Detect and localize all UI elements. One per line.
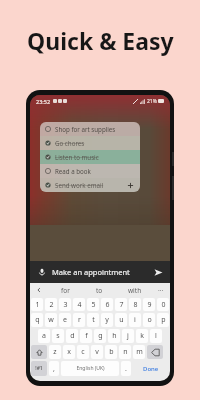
staticText: 7 xyxy=(119,300,124,310)
button[interactable]: y xyxy=(101,313,113,327)
button[interactable]: u xyxy=(115,313,127,327)
button[interactable]: j xyxy=(122,329,134,343)
button[interactable] xyxy=(147,345,163,359)
button[interactable]: 9 xyxy=(143,298,155,311)
staticText: f xyxy=(85,331,88,341)
button[interactable]: g xyxy=(94,329,106,343)
staticText: a xyxy=(42,331,46,341)
button[interactable]: o xyxy=(143,313,155,327)
staticText: u xyxy=(119,315,124,325)
staticText: 1 xyxy=(35,300,40,310)
button[interactable]: . xyxy=(121,361,131,376)
staticText: 8 xyxy=(133,300,138,310)
button[interactable]: Send xyxy=(152,266,164,278)
staticText: h xyxy=(112,331,117,341)
button[interactable]: c xyxy=(77,345,89,359)
button[interactable]: p xyxy=(157,313,169,327)
button[interactable]: 1 xyxy=(31,298,43,311)
button[interactable]: Send work email xyxy=(40,178,140,192)
button[interactable]: with xyxy=(117,283,152,297)
staticText: Go chores xyxy=(55,139,85,147)
staticText: 3 xyxy=(63,300,68,310)
button[interactable]: s xyxy=(52,329,64,343)
button[interactable]: Shop for art supplies xyxy=(40,122,140,192)
staticText: English (UK) xyxy=(76,365,105,372)
staticText: j xyxy=(127,331,129,341)
button[interactable]: 8 xyxy=(129,298,141,311)
staticText: v xyxy=(95,347,99,357)
staticText: 23:52 xyxy=(36,98,51,105)
staticText: g xyxy=(98,331,103,341)
button[interactable]: l xyxy=(150,329,162,343)
staticText: !#1 xyxy=(35,365,43,372)
staticText: 0 xyxy=(161,300,166,310)
staticText: w xyxy=(48,315,54,325)
button[interactable]: q xyxy=(31,313,43,327)
staticText: for xyxy=(61,286,70,295)
staticText: q xyxy=(35,315,40,325)
staticText: t xyxy=(92,315,95,325)
button[interactable]: 5 xyxy=(87,298,99,311)
button[interactable]: e xyxy=(59,313,71,327)
staticText: y xyxy=(105,315,109,325)
staticText: 4 xyxy=(77,300,82,310)
button[interactable]: Previous suggestions xyxy=(30,283,48,297)
button[interactable]: v xyxy=(91,345,103,359)
staticText: d xyxy=(70,331,75,341)
staticText: Make an appointment xyxy=(52,267,152,277)
staticText: k xyxy=(140,331,144,341)
button[interactable]: Read a book xyxy=(40,164,140,178)
button[interactable] xyxy=(31,345,47,359)
button[interactable]: n xyxy=(119,345,131,359)
staticText: e xyxy=(63,315,67,325)
button[interactable]: 6 xyxy=(101,298,113,311)
staticText: b xyxy=(109,347,114,357)
staticText: , xyxy=(53,364,55,374)
button[interactable]: b xyxy=(105,345,117,359)
button[interactable]: 7 xyxy=(115,298,127,311)
button[interactable]: Done xyxy=(132,360,170,377)
button[interactable]: k xyxy=(136,329,148,343)
button[interactable]: Add item xyxy=(126,181,135,190)
button[interactable]: r xyxy=(73,313,85,327)
staticText: 21% xyxy=(147,98,157,105)
staticText: . xyxy=(125,364,127,374)
button[interactable]: f xyxy=(80,329,92,343)
staticText: m xyxy=(136,347,143,357)
button[interactable]: English (UK) xyxy=(61,361,119,376)
button[interactable]: z xyxy=(49,345,61,359)
button[interactable]: h xyxy=(108,329,120,343)
button[interactable]: w xyxy=(45,313,57,327)
button[interactable]: m xyxy=(133,345,145,359)
button[interactable]: 2 xyxy=(45,298,57,311)
button[interactable]: i xyxy=(129,313,141,327)
staticText: Done xyxy=(143,365,159,373)
button[interactable]: t xyxy=(87,313,99,327)
button[interactable]: , xyxy=(49,361,59,376)
button[interactable]: d xyxy=(66,329,78,343)
button[interactable]: 0 xyxy=(157,298,169,311)
staticText: o xyxy=(147,315,152,325)
button[interactable]: 4 xyxy=(73,298,85,311)
button[interactable]: Go chores xyxy=(40,136,140,150)
staticText: s xyxy=(56,331,60,341)
staticText: 5 xyxy=(91,300,96,310)
button[interactable]: to xyxy=(82,283,117,297)
button[interactable]: for xyxy=(48,283,82,297)
button[interactable]: Voice input xyxy=(36,266,48,278)
staticText: Quick & Easy xyxy=(27,25,174,56)
staticText: 9 xyxy=(147,300,152,310)
staticText: r xyxy=(78,315,81,325)
button[interactable]: a xyxy=(38,329,50,343)
button[interactable]: Shop for art supplies xyxy=(40,122,140,136)
button[interactable]: More suggestions xyxy=(152,283,170,297)
staticText: to xyxy=(96,286,103,295)
staticText: Shop for art supplies xyxy=(55,125,116,133)
staticText: z xyxy=(53,347,57,357)
staticText: p xyxy=(161,315,166,325)
button[interactable]: Listen to music xyxy=(40,150,140,164)
button[interactable]: x xyxy=(63,345,75,359)
staticText: c xyxy=(81,347,85,357)
button[interactable]: !#1 xyxy=(31,361,47,376)
button[interactable]: 3 xyxy=(59,298,71,311)
